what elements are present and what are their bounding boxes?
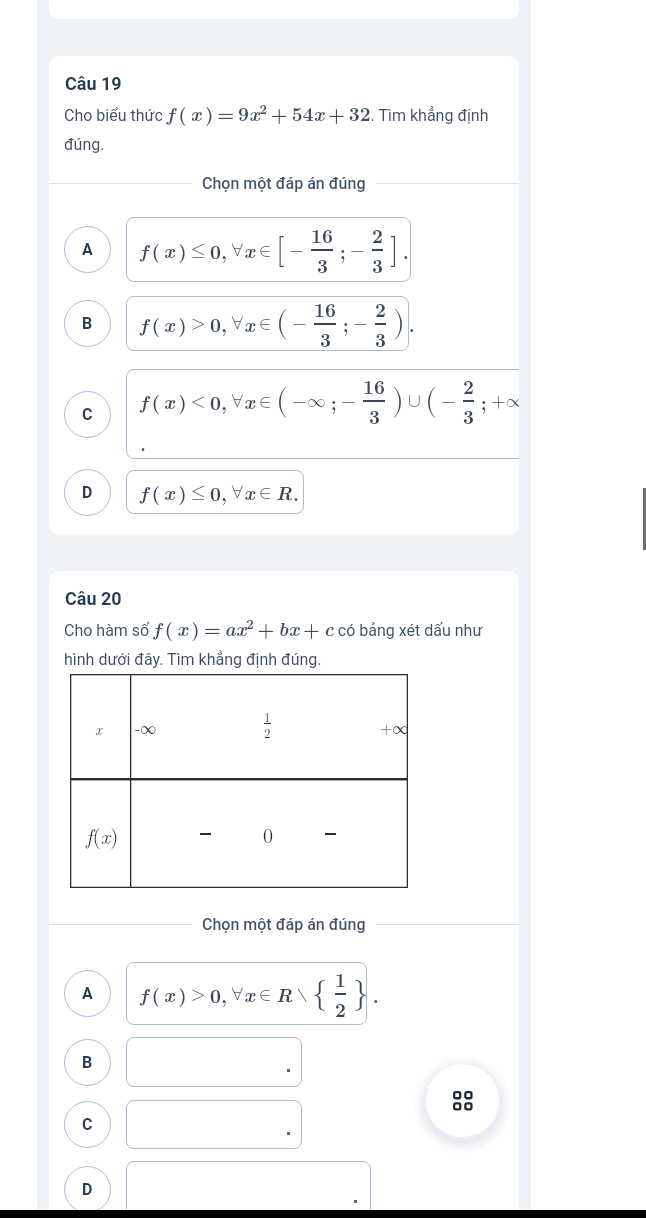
- staticText: f ( x ): [140, 310, 187, 338]
- button[interactable]: f ( x ): [126, 217, 411, 282]
- staticText: }: [353, 978, 369, 1009]
- staticText: 3: [320, 325, 331, 351]
- staticText: 3: [317, 251, 328, 278]
- staticText: f ( x ): [140, 387, 187, 415]
- staticText: ∈: [255, 392, 276, 411]
- staticText: B: [82, 314, 93, 333]
- staticText: ∖: [293, 985, 312, 1004]
- staticText: ∀: [231, 483, 244, 502]
- staticText: 3: [463, 402, 474, 429]
- staticText: (: [425, 385, 437, 416]
- staticText: ∞: [307, 392, 327, 411]
- staticText: (: [276, 307, 288, 338]
- staticText: {: [312, 978, 328, 1009]
- staticText: x: [244, 236, 255, 264]
- staticText: D: [82, 1180, 93, 1199]
- staticText: ;: [339, 310, 353, 337]
- staticText: Câu 20: [65, 588, 122, 609]
- button[interactable]: A: [64, 226, 111, 273]
- staticText: .: [140, 429, 147, 456]
- staticText: ≤: [187, 241, 210, 260]
- staticText: 3: [372, 251, 383, 278]
- staticText: f ( x ): [140, 980, 187, 1008]
- button[interactable]: Danh sách câu hỏi: [425, 1063, 500, 1138]
- staticText: 0,: [210, 237, 231, 264]
- button[interactable]: C: [64, 1101, 111, 1148]
- staticText: 0,: [210, 981, 231, 1008]
- button[interactable]: D: [64, 1166, 111, 1213]
- staticText: x: [95, 718, 102, 739]
- staticText: f ( x ): [140, 236, 187, 264]
- staticText: 3: [375, 325, 386, 351]
- button[interactable]: B: [64, 300, 111, 347]
- staticText: [: [276, 234, 285, 265]
- button[interactable]: [126, 1161, 371, 1218]
- staticText: ≤: [187, 483, 210, 502]
- staticText: −: [292, 314, 307, 333]
- staticText: ∀: [231, 314, 244, 333]
- staticText: −: [289, 241, 304, 260]
- staticText: ): [392, 385, 404, 416]
- staticText: ∈: [255, 483, 276, 502]
- staticText: 0: [263, 820, 273, 848]
- staticText: −: [441, 392, 456, 411]
- staticText: f(x): [86, 820, 119, 850]
- staticText: <: [187, 392, 210, 411]
- staticText: ∈: [255, 241, 276, 260]
- staticText: (: [276, 385, 288, 416]
- staticText: x: [244, 478, 255, 506]
- staticText: Chọn một đáp án đúng: [202, 915, 366, 934]
- staticText: 16: [311, 221, 333, 248]
- staticText: ∈: [255, 985, 276, 1004]
- button[interactable]: C: [64, 391, 111, 438]
- staticText: x: [244, 980, 255, 1008]
- staticText: A: [82, 984, 93, 1003]
- staticText: 0,: [210, 310, 231, 337]
- staticText: B: [82, 1053, 93, 1072]
- staticText: +∞: [491, 392, 519, 411]
- button[interactable]: f ( x ): [126, 296, 409, 351]
- button[interactable]: [126, 1100, 302, 1149]
- button[interactable]: A: [64, 970, 111, 1017]
- staticText: R: [276, 980, 293, 1008]
- staticText: 3: [369, 402, 380, 429]
- staticText: R: [276, 478, 293, 506]
- button[interactable]: f ( x ): [126, 369, 519, 459]
- staticText: ;: [327, 388, 341, 415]
- button[interactable]: f ( x ): [126, 470, 304, 514]
- staticText: ∪: [408, 392, 421, 411]
- staticText: ∀: [231, 241, 244, 260]
- staticText: .: [369, 981, 379, 1008]
- staticText: −: [350, 241, 365, 260]
- staticText: Cho hàm số f ( x ) = ax2 + bx + c có bản…: [64, 614, 504, 669]
- button[interactable]: f ( x ): [126, 962, 367, 1025]
- staticText: A: [82, 240, 93, 259]
- staticText: D: [82, 483, 93, 502]
- staticText: ): [393, 307, 405, 338]
- button[interactable]: [126, 1037, 302, 1087]
- staticText: ;: [336, 237, 350, 264]
- staticText: 2: [335, 995, 346, 1022]
- staticText: 1: [264, 707, 271, 725]
- staticText: −: [353, 314, 368, 333]
- staticText: 16: [314, 295, 336, 322]
- button[interactable]: D: [64, 469, 111, 516]
- staticText: .: [399, 237, 409, 264]
- staticText: f ( x ): [140, 478, 187, 506]
- button[interactable]: B: [64, 1039, 111, 1086]
- staticText: ∀: [231, 985, 244, 1004]
